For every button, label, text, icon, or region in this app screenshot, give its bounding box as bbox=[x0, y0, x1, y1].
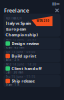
staticText: ▮▮▬ bbox=[52, 1, 60, 6]
button[interactable]: WIN 250 bbox=[3, 14, 60, 37]
staticText: Design review bbox=[11, 41, 38, 46]
staticText: Tue 13 June · 09:00 bbox=[5, 50, 35, 54]
staticText: Team · 1 h bbox=[5, 83, 19, 87]
button[interactable]: Mon 12 June · 20:45 bbox=[3, 37, 60, 49]
staticText: Ship release bbox=[11, 78, 34, 84]
staticText: Solo · 2 h bbox=[5, 58, 19, 62]
staticText: Client handoff bbox=[11, 66, 41, 71]
button[interactable]: Thu 15 June · 11:15 bbox=[3, 75, 60, 87]
staticText: Build sprint bbox=[11, 53, 36, 59]
button[interactable]: Wed 14 June · 14:30 bbox=[3, 62, 60, 74]
staticText: Thu 15 June · 11:15 bbox=[5, 75, 35, 79]
staticText: NEXT MATCH bbox=[5, 17, 21, 20]
staticText: Call · 30 min bbox=[5, 71, 23, 74]
button[interactable]: Tue 13 June · 09:00 bbox=[3, 50, 60, 62]
staticText: Freelance bbox=[4, 7, 29, 14]
staticText: Mon 12 June · 20:45 bbox=[5, 38, 36, 41]
staticText: Team · 45 min bbox=[5, 46, 24, 49]
staticText: (European bbox=[5, 26, 26, 32]
button[interactable]: Close bbox=[53, 7, 61, 14]
staticText: Italy vs Spain bbox=[5, 21, 31, 26]
staticText: WIN 250 bbox=[36, 19, 49, 23]
staticText: Championship) bbox=[5, 32, 37, 37]
staticText: Wed 14 June · 14:30 bbox=[5, 63, 36, 66]
